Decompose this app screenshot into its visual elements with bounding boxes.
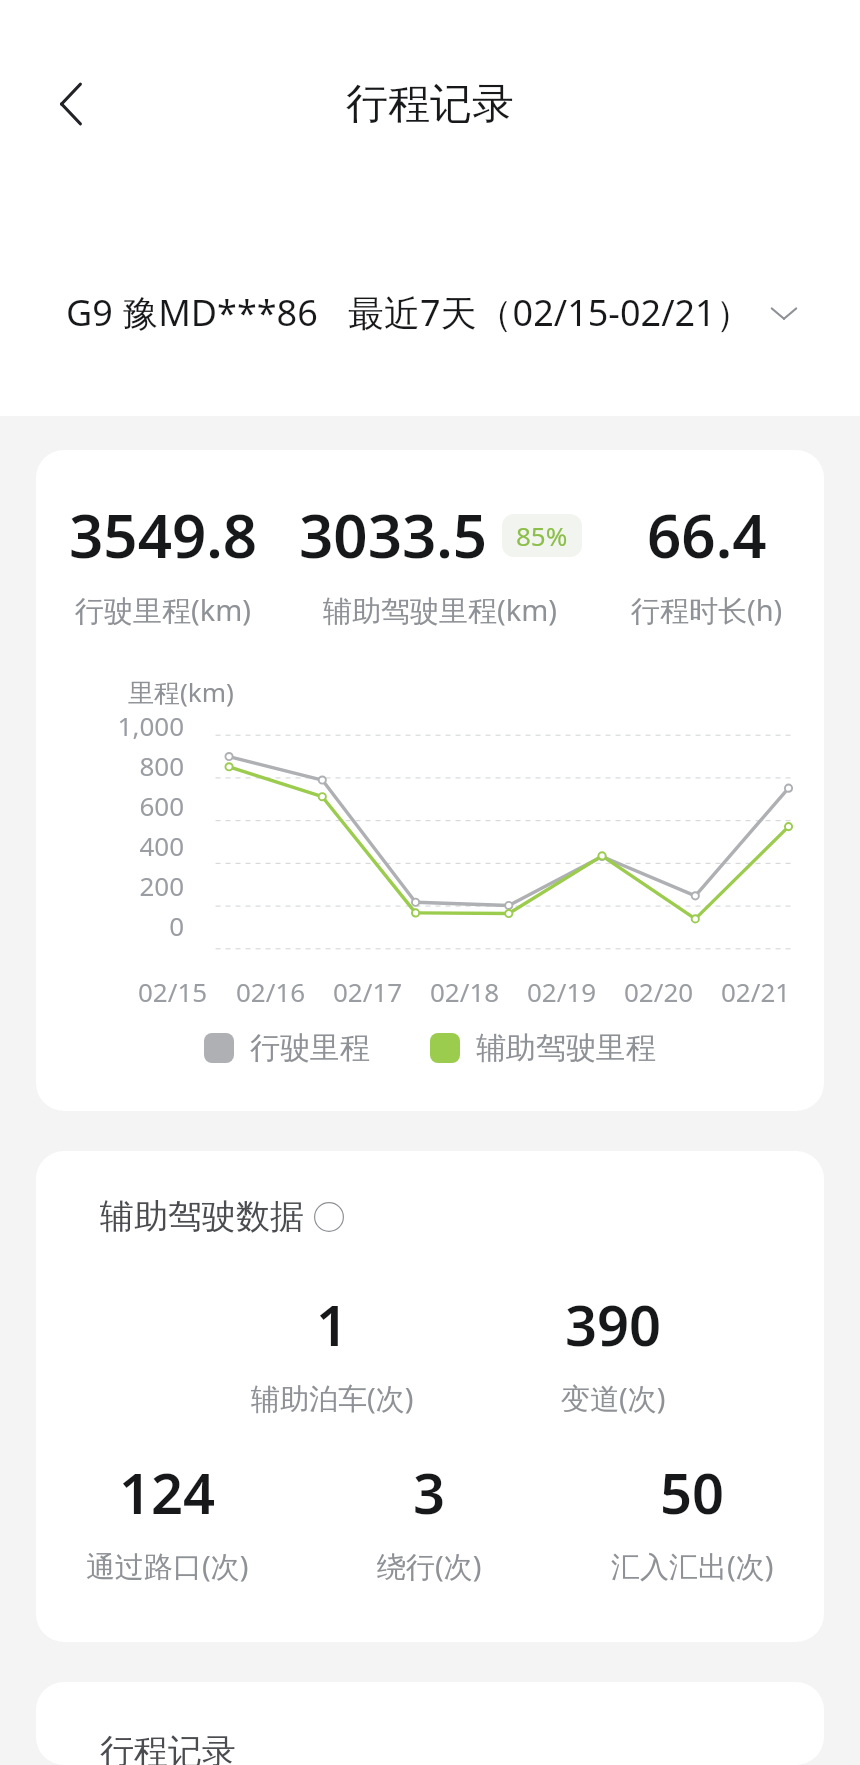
staticText: 390 [565,1286,662,1362]
staticText: 3549.8 [69,494,258,576]
staticText: 行程记录 [346,78,514,131]
staticText: 50 [660,1454,725,1530]
staticText: 变道(次) [561,1378,666,1418]
staticText: 400 [36,828,184,863]
staticText: 600 [36,788,184,823]
staticText: 02/15 [138,974,208,1009]
staticText: 85% [516,518,568,553]
staticText: G9 豫MD***86 [66,288,318,337]
staticText: 02/20 [624,974,694,1009]
staticText: 行程时长(h) [631,590,783,630]
staticText: 汇入汇出(次) [611,1546,774,1586]
staticText: 里程(km) [128,674,234,710]
staticText: 辅助驾驶数据 [100,1195,304,1238]
staticText: 02/17 [333,974,403,1009]
staticText: 1,000 [36,708,184,743]
staticText: 辅助驾驶里程 [476,1029,656,1067]
staticText: 124 [119,1454,216,1530]
staticText: 绕行(次) [377,1546,482,1586]
other: Info [314,1202,344,1232]
staticText: 行驶里程(km) [75,590,252,630]
button[interactable]: Back [16,48,128,160]
staticText: 02/19 [527,974,597,1009]
staticText: 02/18 [430,974,500,1009]
staticText: 0 [36,908,184,943]
staticText: 200 [36,868,184,903]
staticText: 3 [413,1454,446,1530]
staticText: 800 [36,748,184,783]
staticText: 1 [316,1286,349,1362]
staticText: 辅助驾驶里程(km) [323,590,558,630]
staticText: 02/16 [236,974,306,1009]
staticText: 3033.5 [299,494,488,576]
button[interactable]: 最近7天（02/15-02/21） [340,276,808,349]
staticText: 通过路口(次) [86,1546,249,1586]
button[interactable]: 辅助驾驶数据 [100,1195,344,1238]
staticText: 最近7天（02/15-02/21） [348,288,752,337]
staticText: 行程记录 [100,1730,236,1765]
staticText: 辅助泊车(次) [251,1378,414,1418]
staticText: 行驶里程 [250,1029,370,1067]
staticText: 02/21 [721,974,791,1009]
staticText: 66.4 [647,494,767,576]
